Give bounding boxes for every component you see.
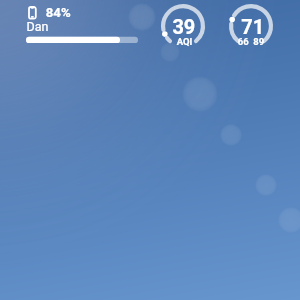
button[interactable]: Air quality index 39 <box>159 2 207 50</box>
button[interactable] <box>20 2 144 48</box>
button[interactable]: Temperature 71 degrees, high 89 low 66 <box>227 2 275 50</box>
